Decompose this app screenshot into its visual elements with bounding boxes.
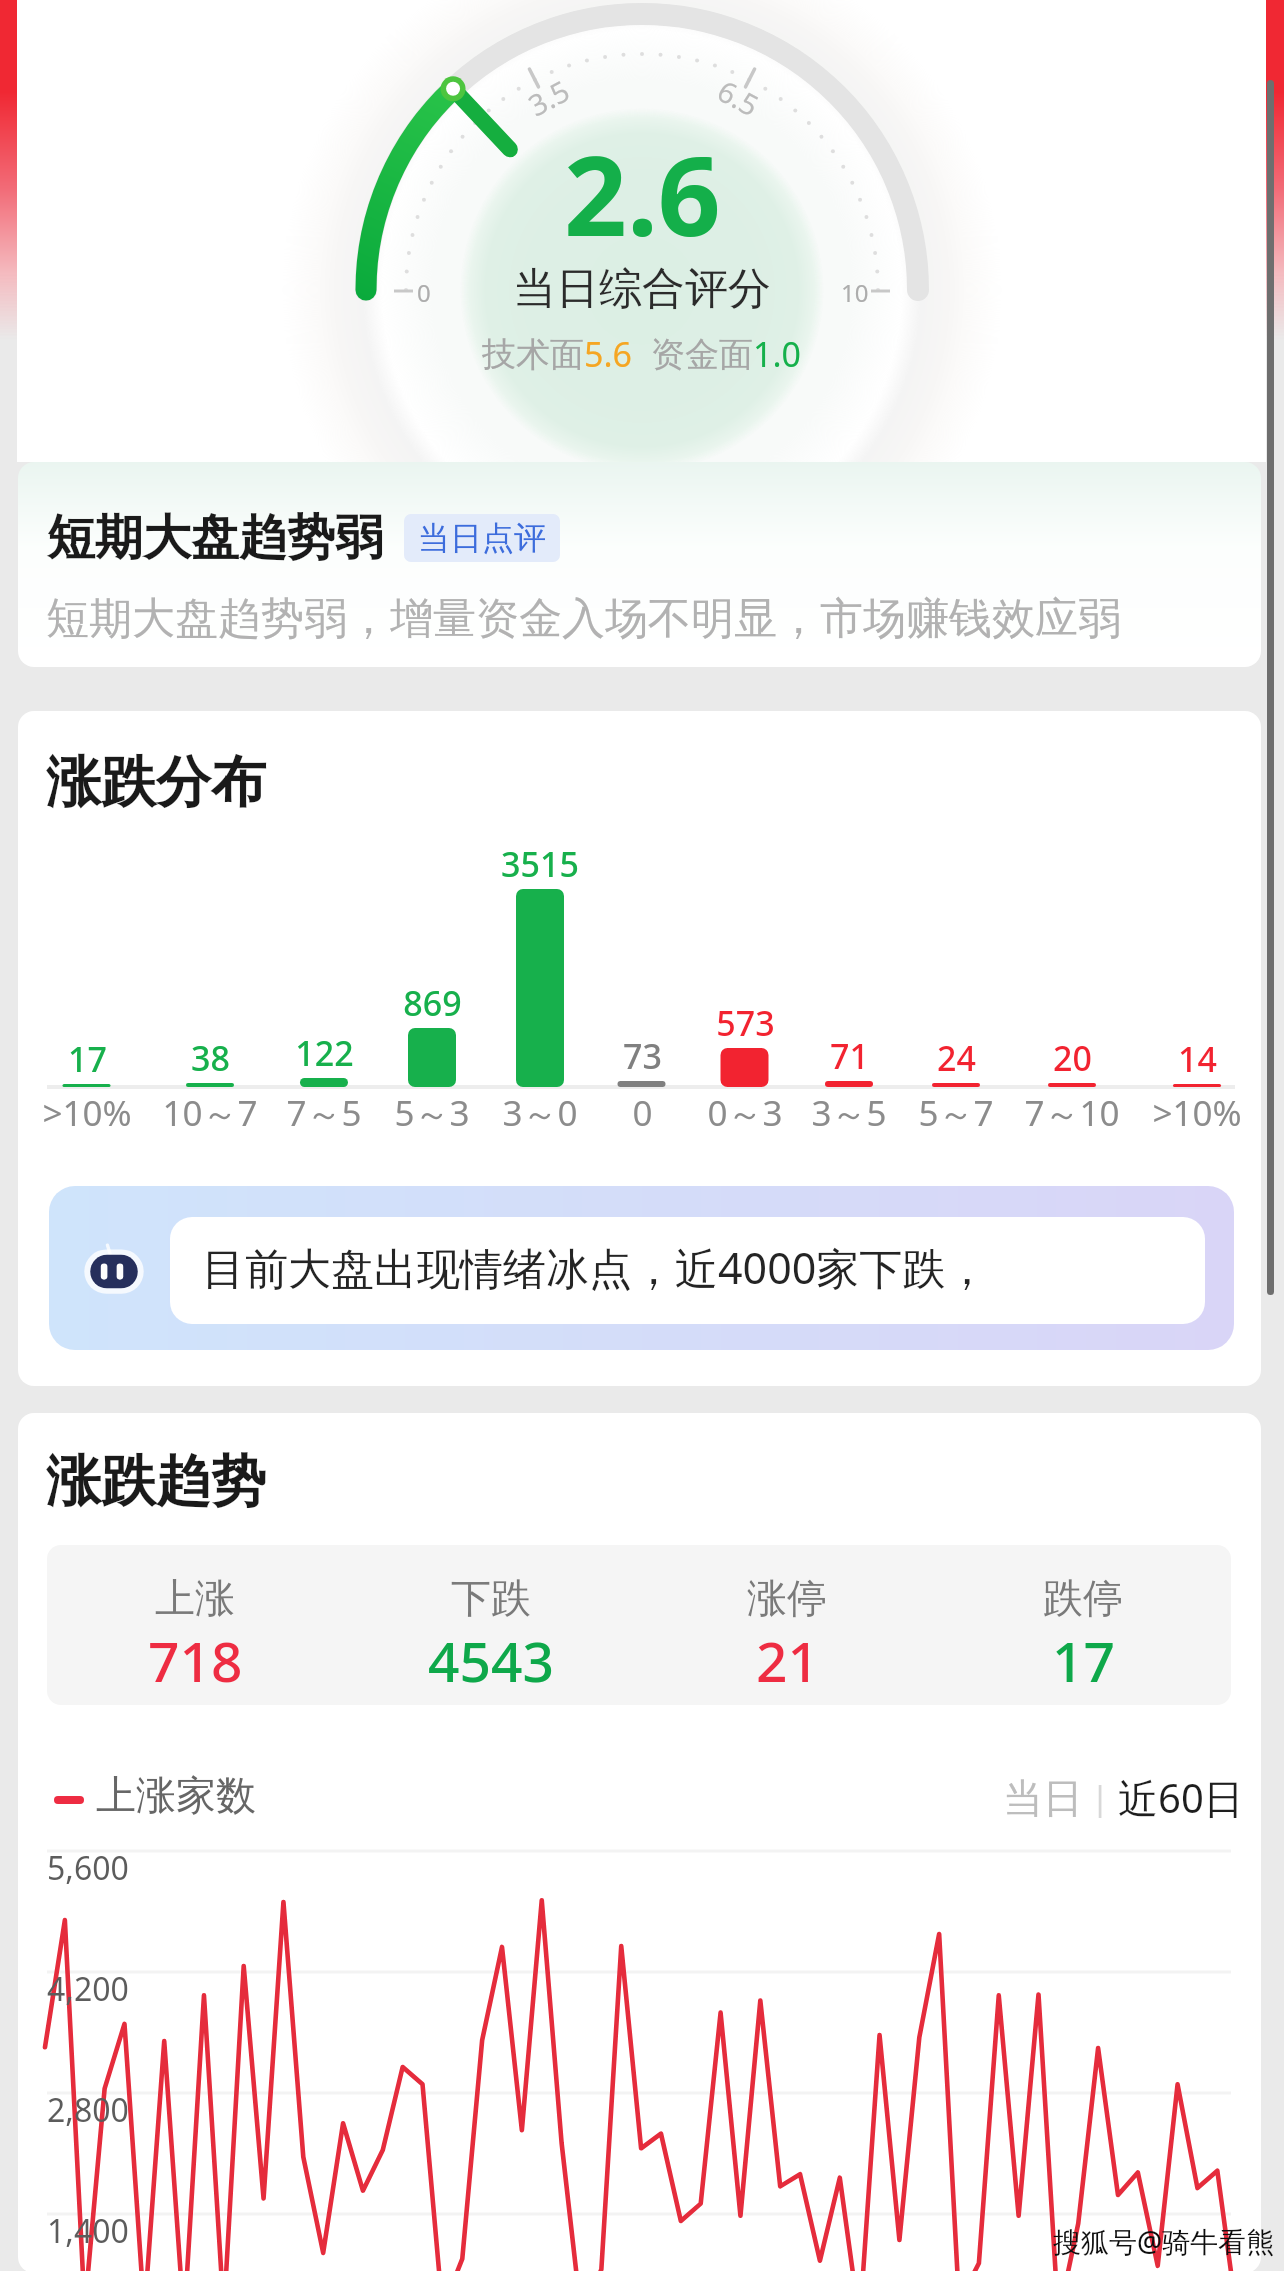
staticText: >10% <box>1152 1089 1242 1137</box>
staticText: 1.0 <box>753 331 802 377</box>
staticText: 涨跌分布 <box>46 748 266 817</box>
staticText: 3～0 <box>502 1089 578 1137</box>
button[interactable]: 当日 <box>1003 1773 1083 1823</box>
button[interactable]: 上涨 <box>47 1545 343 1705</box>
staticText: 当日点评 <box>418 518 546 558</box>
button[interactable]: 下跌 <box>343 1545 639 1705</box>
button[interactable]: 近60日 <box>1118 1770 1244 1825</box>
staticText: >10% <box>42 1089 132 1137</box>
staticText: 6.5 <box>711 71 766 124</box>
staticText: 3515 <box>501 841 579 887</box>
staticText: 122 <box>295 1030 354 1076</box>
staticText: 5～7 <box>918 1089 994 1137</box>
staticText: 5,600 <box>47 1846 129 1890</box>
staticText: 资金面 <box>651 333 753 376</box>
staticText: 短期大盘趋势弱 <box>47 508 383 568</box>
staticText: 4543 <box>428 1623 554 1698</box>
staticText: 搜狐号@骑牛看熊 <box>1053 2222 1275 2260</box>
staticText: 5.6 <box>584 331 633 377</box>
staticText: 当日 <box>1003 1773 1083 1823</box>
staticText: 71 <box>830 1033 869 1079</box>
staticText: 38 <box>191 1035 230 1081</box>
button[interactable]: 涨跌分布 <box>18 711 1261 1386</box>
staticText: 2,800 <box>47 2088 129 2132</box>
staticText: 3.5 <box>521 71 576 124</box>
staticText: 涨停 <box>747 1573 827 1623</box>
staticText: 当日综合评分 <box>513 262 771 316</box>
staticText: 1,400 <box>47 2209 129 2253</box>
staticText: 跌停 <box>1043 1573 1123 1623</box>
staticText: 73 <box>623 1033 662 1079</box>
staticText: 21 <box>756 1623 819 1698</box>
staticText: 上涨家数 <box>96 1770 256 1820</box>
staticText: | <box>1083 1776 1118 1820</box>
staticText: 7～5 <box>286 1089 362 1137</box>
staticText: 17 <box>1052 1623 1115 1698</box>
staticText: 0 <box>632 1089 653 1137</box>
button[interactable]: 涨停 <box>639 1545 935 1705</box>
staticText: 短期大盘趋势弱，增量资金入场不明显，市场赚钱效应弱 <box>46 592 1121 646</box>
staticText: 10～7 <box>162 1089 258 1137</box>
staticText: 下跌 <box>451 1573 531 1623</box>
button[interactable]: 短期大盘趋势弱 <box>18 462 1261 667</box>
staticText: 近60日 <box>1118 1770 1244 1825</box>
staticText: 3～5 <box>811 1089 887 1137</box>
staticText: 20 <box>1053 1035 1092 1081</box>
staticText: 0～3 <box>707 1089 783 1137</box>
button[interactable]: AI 解读 <box>49 1186 1234 1350</box>
staticText: 技术面 <box>482 333 584 376</box>
staticText: 2.6 <box>564 118 721 268</box>
button[interactable]: 涨跌趋势 <box>18 1413 1261 2271</box>
staticText: 17 <box>68 1036 107 1082</box>
staticText: 14 <box>1178 1036 1217 1082</box>
staticText: 869 <box>403 980 462 1026</box>
staticText: 24 <box>937 1035 976 1081</box>
button[interactable]: 当日综合评分 2.6 <box>0 0 1284 462</box>
staticText: 目前大盘出现情绪冰点，近4000家下跌， <box>202 1238 989 1297</box>
staticText: 4,200 <box>47 1967 129 2011</box>
staticText: 上涨 <box>155 1573 235 1623</box>
staticText: 0 <box>417 276 431 309</box>
button[interactable]: 跌停 <box>935 1545 1231 1705</box>
staticText: 10 <box>841 276 869 309</box>
staticText: 7～10 <box>1024 1089 1120 1137</box>
staticText: 718 <box>148 1623 243 1698</box>
staticText: 涨跌趋势 <box>46 1447 266 1516</box>
staticText: 573 <box>716 1000 775 1046</box>
staticText: 5～3 <box>394 1089 470 1137</box>
